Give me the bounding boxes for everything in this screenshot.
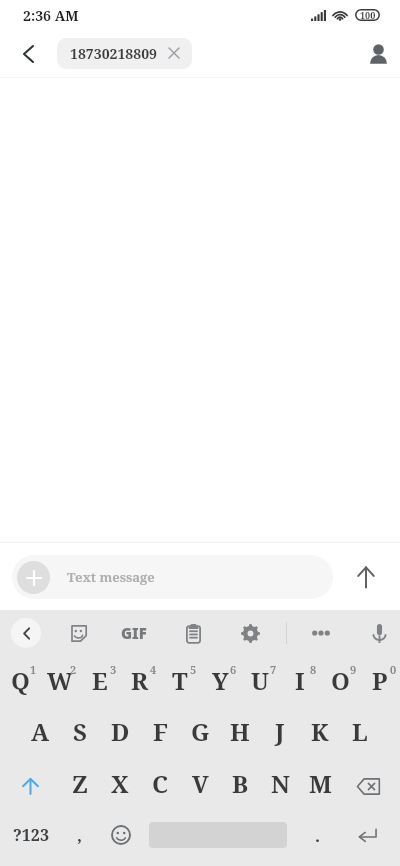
button[interactable]: A [20,706,60,757]
button[interactable]: V [180,757,220,809]
button[interactable]: W [40,655,80,706]
button[interactable]: Shift [0,757,60,809]
staticText: Z [72,767,89,800]
button[interactable]: More options [304,616,338,650]
button[interactable]: ?123 [0,809,61,861]
staticText: B [232,767,249,800]
button[interactable]: G [180,706,220,757]
button[interactable]: D [100,706,140,757]
staticText: 18730218809 [70,44,158,63]
button[interactable]: L [340,706,380,757]
button[interactable]: Y [200,655,240,706]
staticText: 6 [230,662,237,677]
button[interactable]: I [280,655,320,706]
button[interactable]: M [300,757,340,809]
staticText: . [315,824,320,847]
button[interactable]: Back [9,35,47,73]
staticText: 3 [110,662,117,677]
button[interactable]: Close toolbar [11,618,41,648]
button[interactable]: S [60,706,100,757]
staticText: W [47,664,73,697]
button[interactable]: Stickers [61,616,95,650]
staticText: 9 [350,662,357,677]
button[interactable]: Z [60,757,100,809]
button[interactable]: Q [0,655,40,706]
button[interactable]: K [300,706,340,757]
staticText: A [31,715,50,748]
staticText: Text message [67,568,155,586]
button[interactable]: Voice input [362,616,396,650]
button[interactable]: J [260,706,300,757]
staticText: D [111,715,130,748]
button[interactable]: , [61,809,97,861]
button[interactable]: Contact details [359,35,397,73]
staticText: X [111,767,129,800]
staticText: GIF [121,623,147,643]
staticText: C [152,767,169,800]
staticText: 5 [190,662,197,677]
staticText: R [131,664,149,697]
button[interactable]: P [360,655,400,706]
button[interactable]: GIF [117,616,151,650]
staticText: P [372,664,388,697]
staticText: 1 [30,662,37,677]
button[interactable]: 18730218809 [57,38,192,69]
staticText: 8 [310,662,317,677]
staticText: N [271,767,290,800]
staticText: J [275,715,285,748]
button[interactable]: Clipboard [176,616,210,650]
button[interactable]: E [80,655,120,706]
button[interactable]: Send [344,555,388,599]
staticText: F [153,715,168,748]
staticText: , [77,824,82,847]
button[interactable]: O [320,655,360,706]
staticText: E [92,664,108,697]
button[interactable]: U [240,655,280,706]
staticText: 4 [150,662,157,677]
staticText: 2:36 AM [23,6,79,25]
staticText: L [352,715,368,748]
staticText: ?123 [13,824,49,846]
button[interactable]: . [289,809,346,861]
button[interactable]: Text message [12,555,333,599]
button[interactable]: B [220,757,260,809]
button[interactable]: Emoji [97,809,147,861]
button[interactable]: R [120,655,160,706]
button[interactable]: F [140,706,180,757]
button[interactable]: N [260,757,300,809]
staticText: H [230,715,250,748]
staticText: Y [212,664,229,697]
staticText: O [331,664,350,697]
staticText: V [192,767,209,800]
staticText: Q [11,664,30,697]
button[interactable]: X [100,757,140,809]
button[interactable]: Backspace [340,757,400,809]
button[interactable]: H [220,706,260,757]
button[interactable]: Settings [233,616,267,650]
staticText: K [311,715,329,748]
button[interactable]: T [160,655,200,706]
button[interactable]: C [140,757,180,809]
staticText: 0 [390,662,397,677]
staticText: 2 [70,662,77,677]
staticText: U [251,664,269,697]
staticText: G [191,715,210,748]
button[interactable]: Enter [346,809,388,861]
staticText: 100 [360,9,376,21]
staticText: I [295,664,305,697]
staticText: M [309,767,332,800]
staticText: S [73,715,87,748]
staticText: 7 [270,662,277,677]
staticText: T [172,664,188,697]
